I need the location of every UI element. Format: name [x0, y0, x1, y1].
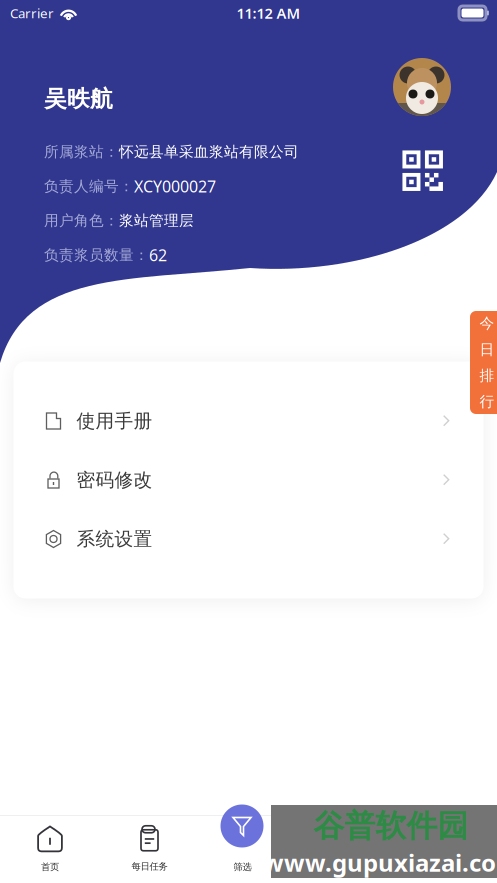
staticText: 用户角色：	[44, 212, 119, 230]
staticText: Carrier	[10, 4, 54, 22]
staticText: XCY000027	[134, 176, 216, 197]
staticText: 行	[479, 392, 494, 410]
button[interactable]: 使用手册	[13, 391, 483, 450]
staticText: www.gupuxiazai.com	[263, 847, 497, 878]
button[interactable]: 二维码	[402, 150, 443, 191]
staticText: 11:12 AM	[236, 3, 300, 23]
staticText: 日	[479, 340, 494, 358]
staticText: 使用手册	[76, 409, 152, 432]
staticText: 所属浆站：	[44, 143, 119, 161]
button[interactable]: 密码修改	[13, 450, 483, 509]
staticText: 怀远县单采血浆站有限公司	[119, 143, 299, 161]
staticText: 今	[479, 314, 494, 332]
button[interactable]: 筛选	[218, 802, 266, 850]
button[interactable]: 首页	[8, 822, 92, 876]
staticText: 负责人编号：	[44, 177, 134, 195]
button[interactable]: 今	[470, 311, 497, 414]
staticText: 筛选	[233, 861, 251, 873]
button[interactable]: 系统设置	[13, 509, 483, 568]
button[interactable]: 每日任务	[107, 822, 191, 876]
staticText: 62	[149, 244, 167, 266]
staticText: 系统设置	[76, 527, 152, 550]
staticText: 排	[479, 366, 494, 384]
staticText: 负责浆员数量：	[44, 246, 149, 264]
staticText: 浆站管理层	[119, 212, 194, 230]
staticText: 每日任务	[131, 861, 167, 872]
staticText: 首页	[41, 861, 59, 873]
staticText: 吴昳航	[44, 85, 113, 113]
staticText: 谷普软件园	[313, 807, 468, 845]
staticText: 密码修改	[76, 468, 152, 491]
button[interactable]: 筛选	[200, 822, 284, 876]
